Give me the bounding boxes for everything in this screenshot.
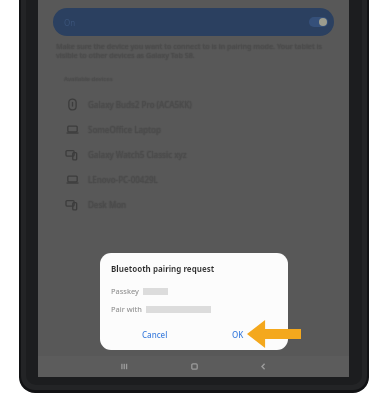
- staticText: LEnovo-PC-00429L: [88, 174, 158, 185]
- staticText: Galaxy Buds2 Pro (ACA5KK): [88, 100, 192, 111]
- staticText: visible to other devices as Galaxy Tab S…: [55, 50, 194, 60]
- staticText: Available devices: [64, 75, 113, 83]
- staticText: SomeOffice Laptop: [88, 125, 161, 136]
- staticText: SomeOffice Laptop: [87, 124, 160, 135]
- staticText: LEnovo-PC-00429L: [88, 175, 158, 186]
- button[interactable]: OK: [226, 325, 250, 344]
- button[interactable]: Bluetooth on: [309, 17, 328, 27]
- staticText: LEnovo-PC-00429L: [87, 174, 157, 185]
- staticText: Make sure the device you want to connect…: [56, 40, 323, 50]
- staticText: Galaxy Buds2 Pro (ACA5KK): [87, 99, 191, 110]
- staticText: Make sure the device you want to connect…: [57, 41, 324, 51]
- other: Tap OK: [247, 320, 301, 348]
- staticText: Galaxy Watch5 Classic xyz: [88, 149, 187, 160]
- staticText: Bluetooth pairing request: [111, 263, 215, 274]
- staticText: Galaxy Watch5 Classic xyz: [87, 149, 186, 160]
- staticText: Available devices: [65, 75, 114, 83]
- button[interactable]: Home: [178, 356, 210, 377]
- button[interactable]: Cancel: [136, 325, 174, 344]
- staticText: LEnovo-PC-00429L: [89, 174, 159, 185]
- button[interactable]: Galaxy Watch5 Classic xyz: [38, 142, 349, 167]
- staticText: SomeOffice Laptop: [88, 123, 161, 134]
- staticText: OK: [232, 329, 244, 340]
- staticText: visible to other devices as Galaxy Tab S…: [56, 50, 195, 60]
- staticText: visible to other devices as Galaxy Tab S…: [56, 51, 195, 61]
- staticText: visible to other devices as Galaxy Tab S…: [57, 50, 196, 60]
- staticText: Make sure the device you want to connect…: [56, 41, 323, 51]
- staticText: Galaxy Buds2 Pro (ACA5KK): [88, 98, 192, 109]
- button[interactable]: Galaxy Buds2 Pro (ACA5KK): [38, 92, 349, 117]
- staticText: Cancel: [142, 329, 168, 340]
- staticText: Galaxy Watch5 Classic xyz: [88, 148, 187, 159]
- staticText: Desk Mon: [88, 200, 127, 211]
- staticText: Pair with: [111, 304, 142, 314]
- staticText: Available devices: [64, 76, 113, 84]
- staticText: Galaxy Watch5 Classic xyz: [89, 149, 188, 160]
- staticText: Desk Mon: [88, 199, 127, 210]
- staticText: LEnovo-PC-00429L: [88, 173, 158, 184]
- staticText: SomeOffice Laptop: [88, 124, 161, 135]
- staticText: Desk Mon: [89, 199, 128, 210]
- staticText: Galaxy Buds2 Pro (ACA5KK): [89, 99, 193, 110]
- button[interactable]: Recent apps: [107, 356, 139, 377]
- staticText: Desk Mon: [87, 199, 126, 210]
- staticText: SomeOffice Laptop: [89, 124, 162, 135]
- button[interactable]: On: [53, 8, 334, 36]
- staticText: Make sure the device you want to connect…: [56, 42, 323, 52]
- staticText: On: [64, 17, 76, 28]
- staticText: Available devices: [63, 75, 112, 83]
- staticText: Galaxy Buds2 Pro (ACA5KK): [88, 99, 192, 110]
- staticText: visible to other devices as Galaxy Tab S…: [56, 49, 195, 59]
- staticText: Passkey: [111, 286, 139, 296]
- button[interactable]: Back: [247, 356, 279, 377]
- staticText: Available devices: [64, 74, 113, 82]
- staticText: Desk Mon: [88, 198, 127, 209]
- staticText: Galaxy Watch5 Classic xyz: [88, 150, 187, 161]
- staticText: Make sure the device you want to connect…: [55, 41, 322, 51]
